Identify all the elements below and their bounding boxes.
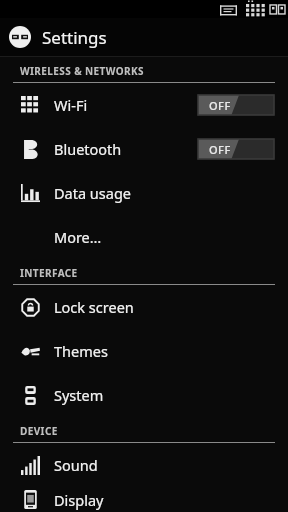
button[interactable]: Data usage (0, 171, 288, 215)
button[interactable]: Sound (0, 443, 288, 487)
button[interactable]: Wi-Fi (0, 83, 288, 127)
button[interactable]: Bluetooth (0, 127, 288, 171)
button[interactable]: Display (0, 487, 288, 512)
button[interactable]: Settings (0, 18, 288, 56)
staticText: More… (54, 227, 102, 247)
button[interactable]: Lock screen (0, 285, 288, 329)
staticText: Bluetooth (54, 139, 122, 159)
staticText: OFF (209, 98, 231, 113)
staticText: WIRELESS & NETWORKS (20, 64, 144, 78)
button[interactable]: Toggle off (198, 139, 274, 159)
button[interactable]: More… (0, 215, 288, 259)
staticText: OFF (209, 142, 231, 157)
button[interactable]: Themes (0, 329, 288, 373)
staticText: System (54, 385, 104, 405)
staticText: Data usage (54, 183, 131, 203)
staticText: Lock screen (54, 297, 134, 317)
button[interactable]: System (0, 373, 288, 417)
staticText: DEVICE (20, 424, 58, 438)
button[interactable]: Toggle off (198, 95, 274, 115)
staticText: Settings (42, 26, 107, 49)
staticText: INTERFACE (20, 266, 78, 280)
staticText: Themes (54, 341, 108, 361)
staticText: Sound (54, 455, 98, 475)
staticText: Display (54, 490, 104, 510)
staticText: Wi-Fi (54, 95, 88, 115)
